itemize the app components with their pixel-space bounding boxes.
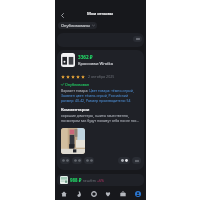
button[interactable]: Like or dislike	[118, 157, 130, 164]
staticText: Опубликован	[65, 82, 90, 87]
button[interactable]: More	[132, 157, 141, 164]
button[interactable]: Action 2	[72, 157, 82, 164]
staticText: Вариант товара: Цвет товара: тёмно-серый…	[61, 88, 140, 103]
button[interactable]: Profile	[131, 187, 144, 200]
staticText: Комментарии	[61, 107, 90, 112]
button[interactable]: Home	[57, 187, 70, 200]
staticText: 2 октября 2025	[88, 74, 115, 79]
button[interactable]: Back	[57, 10, 67, 20]
button[interactable]: Search	[87, 187, 100, 200]
button[interactable]: Cart	[116, 187, 129, 200]
button[interactable]: 988 ₽	[57, 174, 144, 186]
button[interactable]: More options	[133, 36, 142, 42]
staticText: 988 ₽	[70, 177, 82, 183]
button[interactable]: Опубликованы	[58, 22, 97, 29]
button[interactable]: Favourites	[101, 187, 114, 200]
staticText: Мои отзывы	[87, 11, 114, 17]
button[interactable]: Action 3	[84, 157, 94, 164]
button[interactable]: Catalog	[72, 187, 85, 200]
staticText: Кроссовки Wrotka	[78, 61, 113, 66]
staticText: хорошие джоггеры, сшиты качественно, пос…	[61, 113, 140, 123]
button[interactable]: Action 1	[60, 157, 70, 164]
button[interactable]: Previous review	[57, 33, 144, 47]
staticText: Опубликованы	[61, 23, 91, 28]
staticText: +6%	[97, 178, 105, 183]
staticText: кешбэк	[83, 178, 96, 183]
staticText: 3362 ₽	[78, 54, 93, 60]
